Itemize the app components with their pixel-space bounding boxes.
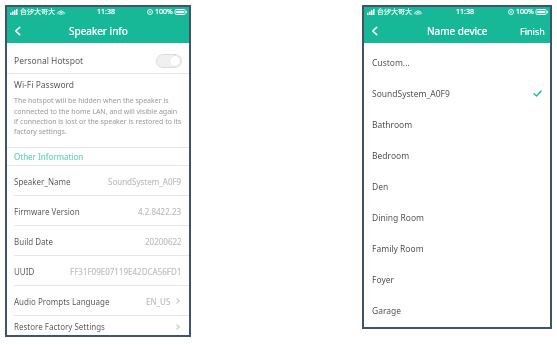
staticText: 台汐大哥大 [377, 7, 412, 16]
staticText: Garden [372, 326, 402, 329]
button[interactable]: Family Room [362, 233, 552, 264]
button[interactable]: Wi-Fi Password [5, 74, 191, 96]
button[interactable]: Bathroom [362, 109, 552, 140]
staticText: Restore Factory Settings [14, 321, 105, 332]
button[interactable]: Garage [362, 295, 552, 326]
button[interactable]: Dining Room [362, 202, 552, 233]
staticText: Speaker info [69, 24, 128, 38]
button[interactable]: Speaker_Name [5, 166, 191, 196]
staticText: Den [372, 181, 389, 193]
button[interactable]: Bedroom [362, 140, 552, 171]
staticText: Firmware Version [14, 206, 80, 217]
staticText: 100% [155, 7, 173, 17]
staticText: SoundSystem_A0F9 [372, 88, 450, 100]
staticText: Build Date [14, 236, 53, 247]
staticText: Personal Hotspot [14, 55, 84, 67]
button[interactable]: Back [9, 22, 27, 40]
button[interactable]: Personal Hotspot [5, 47, 191, 74]
button[interactable]: SoundSystem_A0F9 [362, 78, 552, 109]
staticText: 100% [516, 7, 534, 17]
button[interactable]: UUID [5, 256, 191, 286]
staticText: UUID [14, 266, 35, 277]
staticText: Garage [372, 305, 402, 317]
staticText: Bathroom [372, 119, 413, 131]
button[interactable]: Foyer [362, 264, 552, 295]
staticText: Custom... [372, 57, 410, 69]
staticText: Finish [520, 25, 545, 37]
button[interactable]: Back [366, 22, 384, 40]
staticText: Family Room [372, 243, 424, 255]
staticText: The hotspot will be hidden when the spea… [14, 96, 182, 136]
staticText: 20200622 [145, 236, 182, 247]
button[interactable]: Audio Prompts Language [5, 286, 191, 316]
staticText: Dining Room [372, 212, 425, 224]
staticText: 台汐大哥大 [20, 7, 55, 16]
staticText: 11:38 [456, 7, 474, 17]
button[interactable]: Finish [513, 21, 552, 41]
staticText: Foyer [372, 274, 395, 286]
staticText: Audio Prompts Language [14, 296, 110, 307]
staticText: SoundSystem_A0F9 [108, 176, 182, 187]
staticText: 11:38 [97, 7, 115, 17]
button[interactable]: Garden [362, 326, 552, 329]
staticText: Speaker_Name [14, 176, 71, 187]
staticText: EN_US [146, 296, 171, 307]
staticText: 4.2.8422.23 [138, 206, 182, 217]
staticText: FF31F09E07119E42DCA56FD1 [70, 266, 182, 277]
button[interactable]: Build Date [5, 226, 191, 256]
button[interactable]: Custom... [362, 47, 552, 78]
button[interactable]: Restore Factory Settings [5, 316, 191, 337]
button[interactable]: Den [362, 171, 552, 202]
staticText: Wi-Fi Password [14, 79, 75, 91]
staticText: Name device [427, 24, 488, 38]
button[interactable]: Firmware Version [5, 196, 191, 226]
staticText: Bedroom [372, 150, 410, 162]
staticText: Other Information [14, 151, 84, 162]
